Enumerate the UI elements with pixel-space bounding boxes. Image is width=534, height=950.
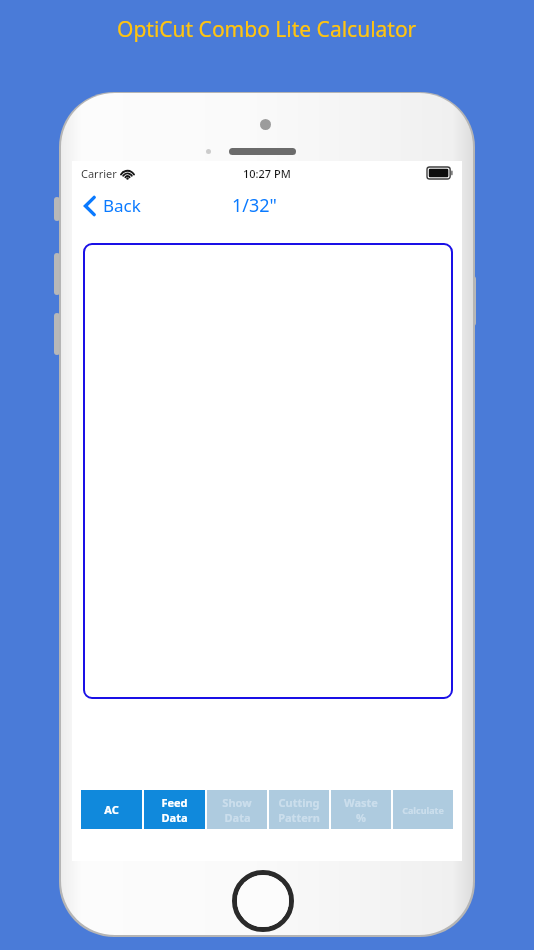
button[interactable]: AC — [81, 790, 142, 829]
staticText: % — [356, 810, 366, 825]
staticText: Show — [222, 795, 252, 810]
staticText: Data — [224, 810, 251, 825]
staticText: Carrier — [81, 166, 117, 181]
button[interactable]: Back — [78, 188, 147, 223]
staticText: Back — [103, 194, 141, 217]
staticText: 10:27 PM — [243, 166, 291, 181]
button[interactable]: Show — [207, 790, 267, 829]
staticText: OptiCut Combo Lite Calculator — [117, 15, 417, 44]
button[interactable]: Cutting — [269, 790, 329, 829]
staticText: Waste — [344, 795, 378, 810]
button[interactable]: Feed — [144, 790, 205, 829]
staticText: AC — [104, 802, 119, 817]
button[interactable]: Calculate — [393, 790, 453, 829]
staticText: Cutting — [278, 795, 320, 810]
staticText: Pattern — [278, 810, 320, 825]
staticText: Data — [161, 810, 188, 825]
staticText: 1/32" — [232, 193, 277, 218]
staticText: Feed — [161, 795, 188, 810]
button[interactable] — [83, 243, 453, 699]
button[interactable]: Waste — [331, 790, 391, 829]
staticText: Calculate — [402, 804, 444, 816]
button[interactable]: Home — [232, 870, 294, 932]
